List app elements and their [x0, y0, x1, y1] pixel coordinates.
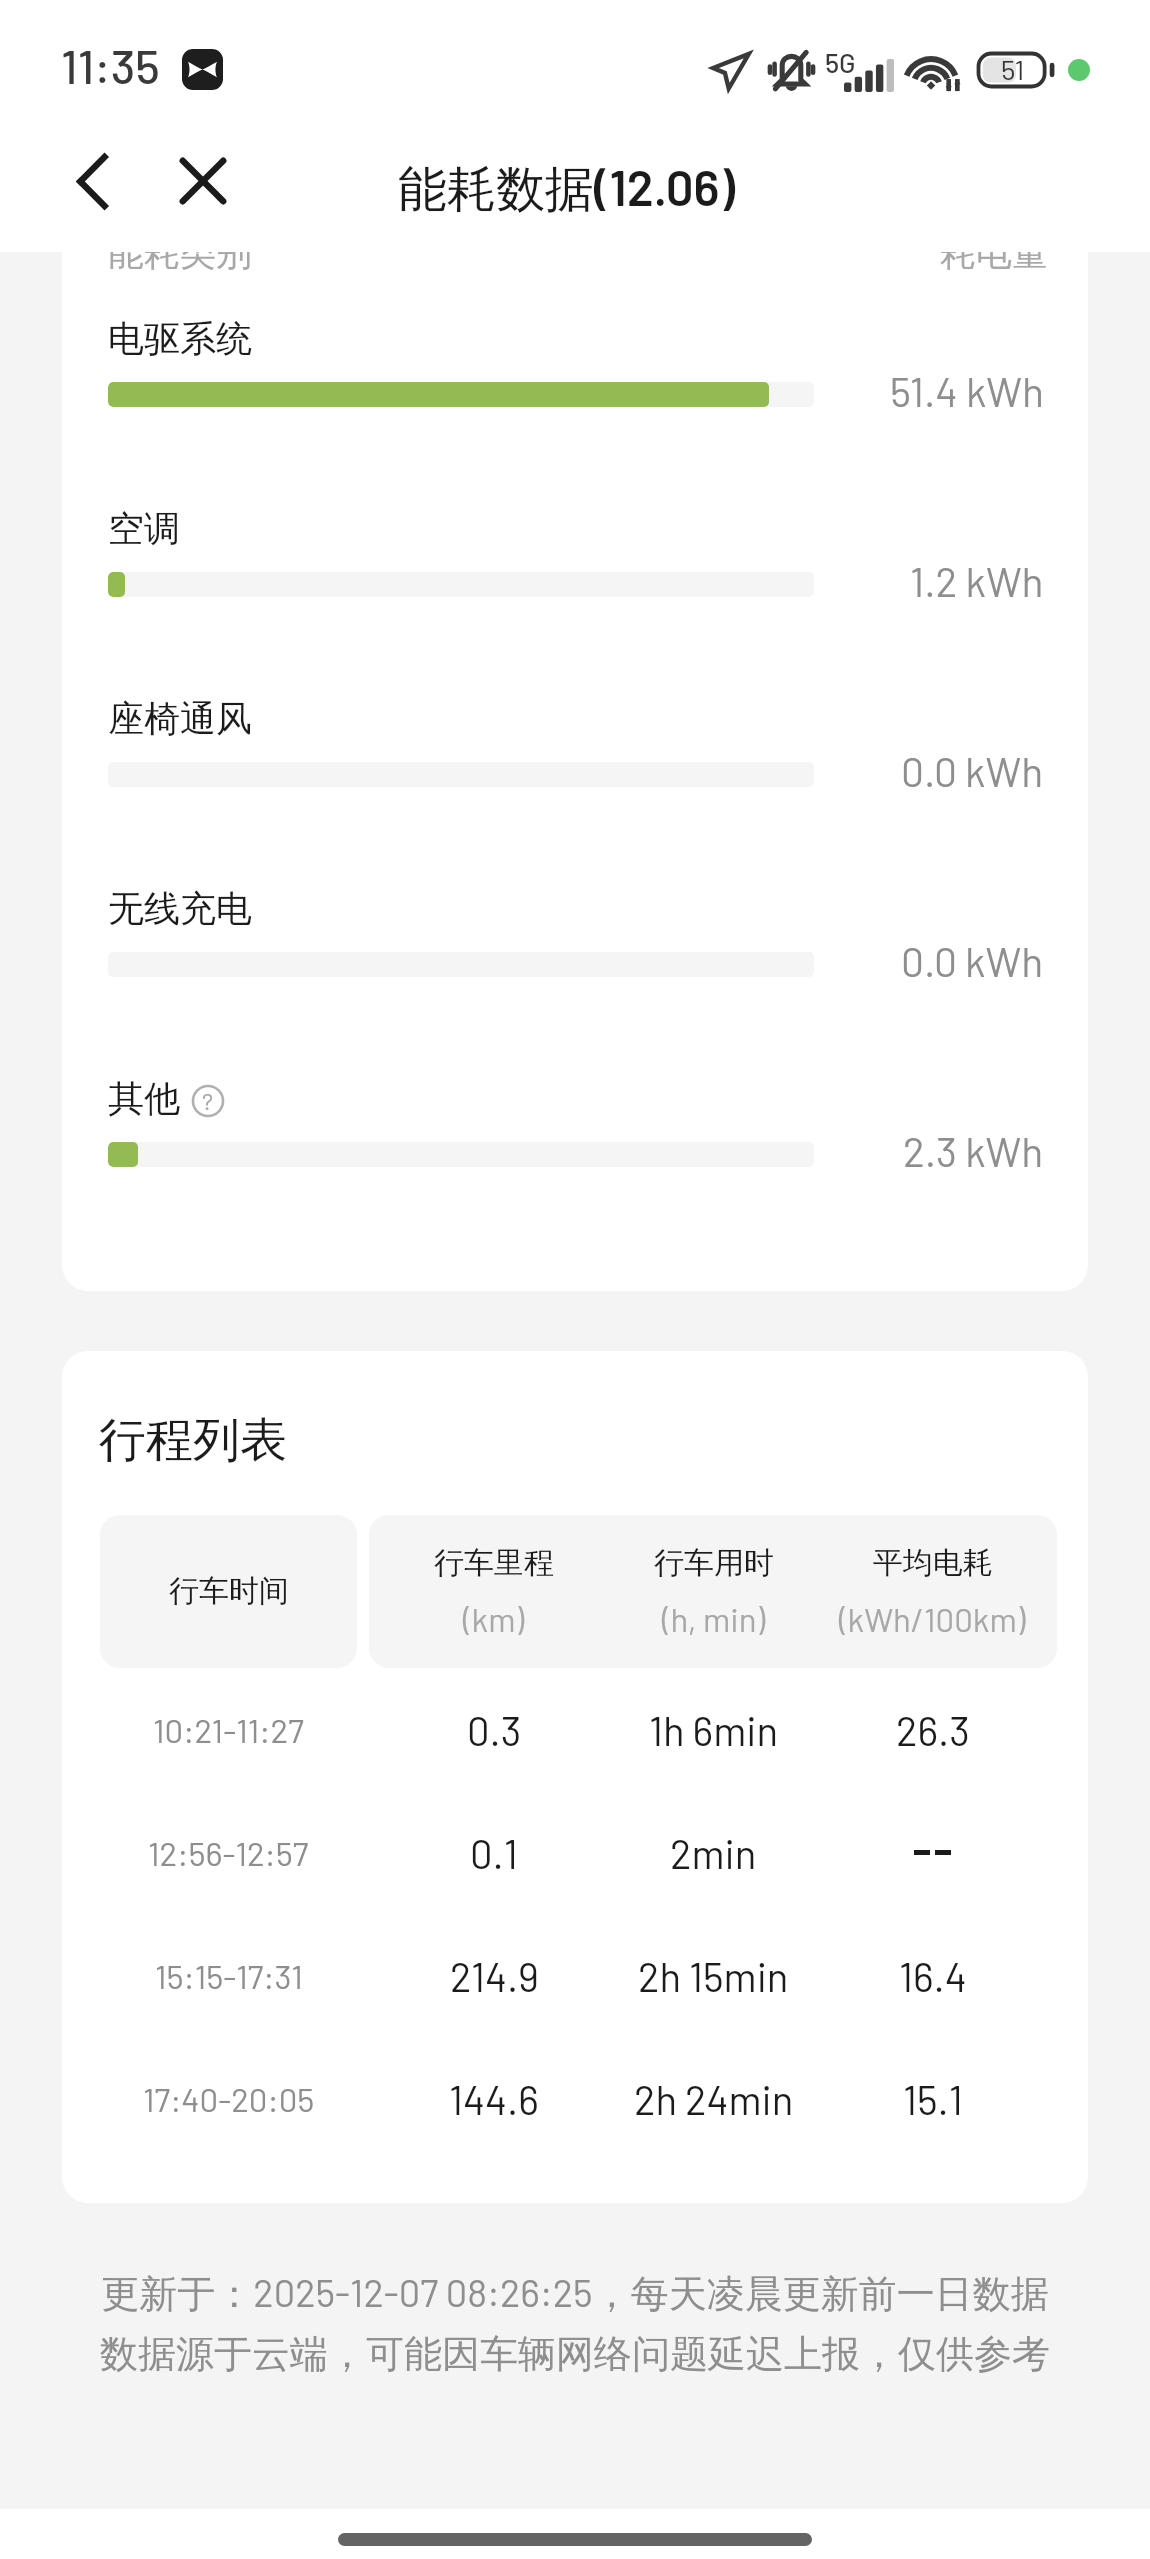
staticText: 51: [1001, 52, 1025, 86]
staticText: 耗电量: [940, 252, 1048, 275]
staticText: 平均电耗: [873, 1544, 993, 1582]
staticText: 2.3 kWh: [903, 1126, 1044, 1175]
staticText: (km): [463, 1599, 525, 1639]
staticText: 26.3: [896, 1706, 970, 1754]
staticText: 11:35: [61, 37, 160, 93]
staticText: 更新于：2025-12-07 08:26:25，每天凌晨更新前一日数据: [101, 2269, 1049, 2318]
staticText: 座椅通风: [108, 696, 252, 741]
staticText: 214.9: [450, 1952, 539, 2000]
staticText: 0.3: [467, 1706, 522, 1754]
staticText: 5G: [825, 46, 856, 78]
staticText: 2h 24min: [634, 2075, 794, 2123]
staticText: 16.4: [899, 1952, 967, 2000]
button[interactable]: Back: [48, 138, 134, 224]
staticText: 行车时间: [169, 1572, 289, 1610]
staticText: 其他: [108, 1076, 180, 1121]
staticText: 0.0 kWh: [901, 746, 1044, 795]
staticText: (kWh/100km): [839, 1599, 1026, 1639]
staticText: 行车里程: [434, 1544, 554, 1582]
staticText: 数据源于云端，可能因车辆网络问题延迟上报，仅供参考: [100, 2330, 1050, 2378]
staticText: 15:15-17:31: [155, 1956, 303, 1996]
staticText: 51.4 kWh: [890, 366, 1044, 415]
staticText: 12:56-12:57: [148, 1833, 309, 1873]
staticText: 能耗数据(12.06): [398, 157, 735, 221]
staticText: 15.1: [903, 2075, 963, 2123]
staticText: 空调: [108, 506, 180, 551]
staticText: 0.1: [470, 1829, 518, 1877]
staticText: 能耗类别: [108, 252, 252, 275]
staticText: 10:21-11:27: [153, 1710, 304, 1750]
staticText: 2min: [670, 1829, 757, 1877]
staticText: (h, min): [662, 1599, 766, 1639]
staticText: 2h 15min: [638, 1952, 789, 2000]
staticText: 1h 6min: [649, 1706, 778, 1754]
staticText: 行程列表: [99, 1411, 287, 1470]
staticText: 1.2 kWh: [910, 556, 1044, 605]
button[interactable]: Close: [160, 138, 246, 224]
staticText: 0.0 kWh: [901, 936, 1044, 985]
staticText: 144.6: [449, 2075, 539, 2123]
staticText: 无线充电: [108, 886, 252, 931]
staticText: 行车用时: [654, 1544, 774, 1582]
staticText: 17:40-20:05: [143, 2079, 315, 2119]
staticText: ?: [202, 1086, 214, 1115]
staticText: 电驱系统: [108, 316, 252, 361]
